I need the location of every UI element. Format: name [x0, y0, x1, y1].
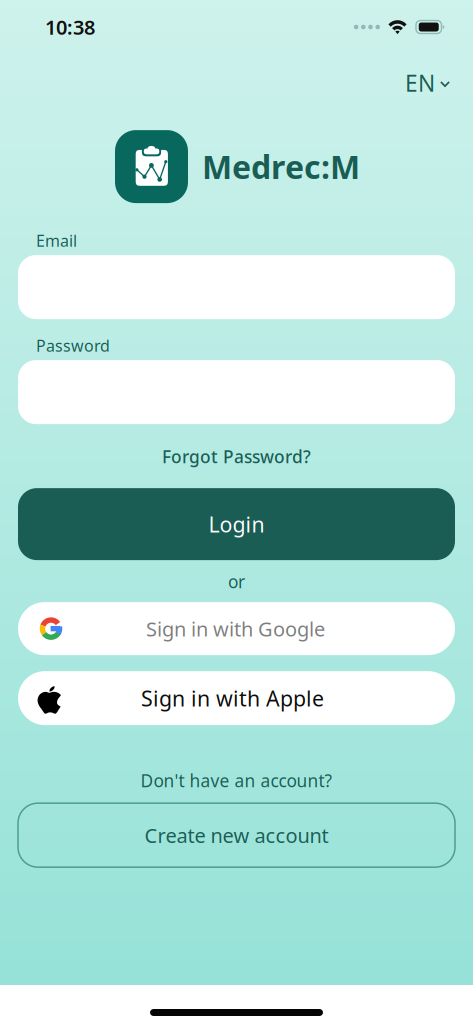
button[interactable]: Sign in with Google	[18, 602, 455, 655]
staticText: Don't have an account?	[140, 769, 332, 792]
staticText: Medrec:M	[202, 145, 360, 188]
button[interactable]: EN	[395, 60, 460, 106]
button[interactable]: Create new account	[18, 803, 455, 867]
staticText: Email	[36, 230, 77, 251]
button[interactable]: Email	[18, 255, 455, 319]
staticText: Sign in with Apple	[141, 684, 324, 712]
staticText: EN	[405, 68, 435, 98]
staticText: Password	[36, 335, 110, 356]
staticText: Create new account	[144, 822, 328, 848]
staticText: Login	[208, 510, 264, 538]
button[interactable]: Password	[18, 360, 455, 424]
staticText: 10:38	[45, 14, 95, 40]
button[interactable]: Forgot Password?	[148, 437, 325, 476]
staticText: or	[228, 570, 245, 593]
button[interactable]: Sign in with Apple	[18, 671, 455, 725]
button[interactable]: Login	[18, 488, 455, 560]
staticText: Sign in with Google	[146, 615, 325, 642]
staticText: Forgot Password?	[162, 445, 311, 468]
